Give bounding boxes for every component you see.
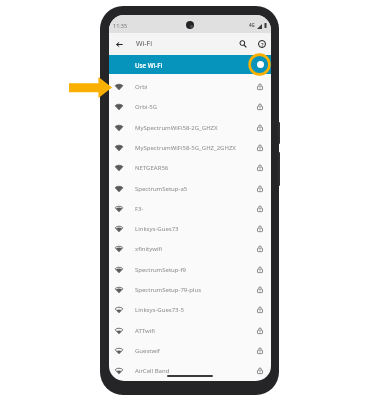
staticText: Guestwif	[135, 347, 255, 355]
button[interactable]: F3-	[109, 198, 271, 218]
staticText: Linksys-Gues73	[135, 225, 255, 233]
staticText: F3-	[135, 205, 255, 213]
staticText: SpectrumSetup-f9	[135, 266, 255, 274]
button[interactable]: SpectrumSetup-f9	[109, 259, 271, 279]
staticText: 4G	[249, 22, 255, 28]
button[interactable]: MySpectrumWiFi58-2G_GHZX	[109, 117, 271, 137]
staticText: NETGEAR56	[135, 164, 255, 172]
staticText: 11:35	[113, 22, 128, 29]
staticText: Use Wi-Fi	[135, 61, 163, 69]
button[interactable]: SpectrumSetup-a5	[109, 178, 271, 198]
staticText: AirCell Band	[135, 367, 255, 375]
button[interactable]: ATTwifi	[109, 320, 271, 340]
button[interactable]: Back	[111, 36, 128, 53]
staticText: ATTwifi	[135, 327, 255, 335]
staticText: Linksys-Gues73-5	[135, 306, 255, 314]
staticText: SpectrumSetup-a5	[135, 185, 255, 193]
button[interactable]: Linksys-Gues73-5	[109, 299, 271, 319]
staticText: MySpectrumWiFi58-2G_GHZX	[135, 124, 255, 132]
staticText: MySpectrumWiFi58-5G_GHZ_2GHZX	[135, 144, 255, 152]
button[interactable]: Guestwif	[109, 340, 271, 360]
button[interactable]: Orbi	[109, 76, 271, 96]
staticText: Wi-Fi	[136, 39, 153, 49]
staticText: SpectrumSetup-79-plus	[135, 286, 255, 294]
button[interactable]: Search	[236, 37, 250, 51]
staticText: xfinitywifi	[135, 245, 255, 253]
button[interactable]: MySpectrumWiFi58-5G_GHZ_2GHZX	[109, 137, 271, 157]
button[interactable]: Orbi-5G	[109, 96, 271, 116]
button[interactable]: NETGEAR56	[109, 157, 271, 177]
staticText: Orbi-5G	[135, 103, 255, 111]
button[interactable]: AirCell Band	[109, 360, 271, 380]
button[interactable]: Use Wi-Fi	[109, 55, 271, 74]
staticText: ?	[261, 41, 264, 48]
button[interactable]: Help	[255, 37, 269, 51]
staticText: Orbi	[135, 83, 255, 91]
button[interactable]: Linksys-Gues73	[109, 218, 271, 238]
button[interactable]: xfinitywifi	[109, 238, 271, 258]
button[interactable]: SpectrumSetup-79-plus	[109, 279, 271, 299]
